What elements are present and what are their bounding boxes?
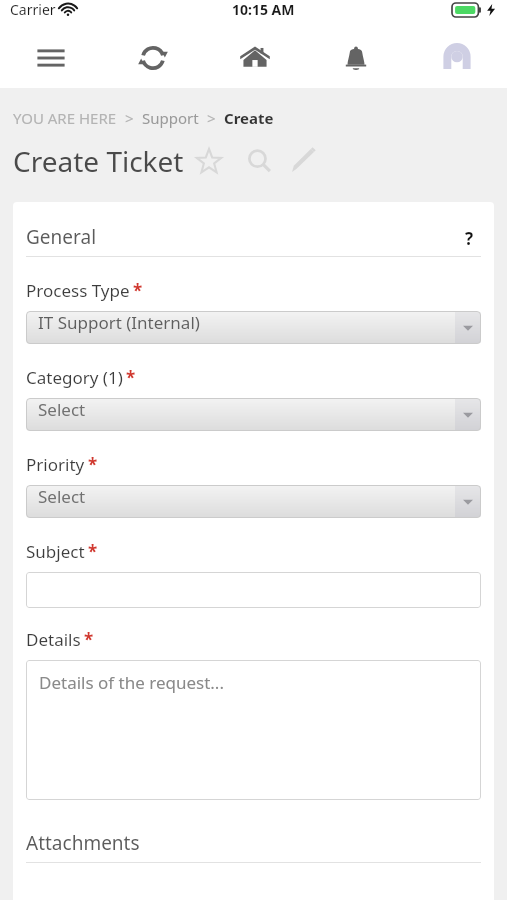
staticText: Category (1) (26, 366, 123, 389)
staticText: * (133, 279, 143, 302)
staticText: Details (26, 628, 81, 651)
staticText: * (126, 366, 136, 389)
button[interactable]: Profile (406, 28, 507, 88)
staticText: Details of the request... (39, 671, 224, 694)
staticText: Select (38, 398, 86, 421)
button[interactable]: Refresh (102, 28, 204, 88)
button[interactable]: Home (204, 28, 305, 88)
button[interactable]: Details of the request... (26, 660, 481, 800)
staticText: Select (38, 485, 86, 508)
button[interactable]: Favorite (192, 144, 226, 178)
button[interactable]: Support (142, 108, 199, 128)
staticText: Attachments (26, 830, 140, 856)
button[interactable]: Menu (0, 28, 102, 88)
staticText: Carrier (10, 0, 56, 19)
staticText: * (88, 453, 98, 476)
staticText: > (125, 108, 134, 128)
staticText: General (26, 224, 97, 250)
staticText: Process Type (26, 279, 130, 302)
staticText: > (207, 108, 216, 128)
staticText: * (84, 628, 94, 651)
staticText: IT Support (Internal) (38, 311, 200, 334)
button[interactable]: YOU ARE HERE (13, 108, 117, 128)
button[interactable]: Search (242, 144, 276, 178)
button[interactable]: Create (224, 108, 274, 128)
button[interactable]: Select (26, 398, 481, 431)
staticText: Subject (26, 540, 85, 563)
staticText: Priority (26, 453, 85, 476)
staticText: * (88, 540, 98, 563)
button[interactable] (26, 572, 481, 608)
button[interactable]: Select (26, 485, 481, 518)
button[interactable]: Edit (286, 144, 320, 178)
staticText: Create Ticket (13, 142, 184, 180)
staticText: 10:15 AM (232, 0, 295, 19)
button[interactable]: Notifications (305, 28, 406, 88)
staticText: ? (465, 227, 474, 250)
button[interactable]: Help (457, 226, 481, 250)
button[interactable]: IT Support (Internal) (26, 311, 481, 344)
